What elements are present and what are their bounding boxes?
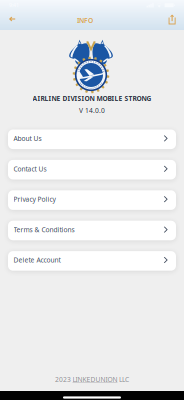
staticText: 2023: [55, 375, 71, 384]
staticText: Terms & Conditions: [14, 225, 75, 234]
staticText: LINKEDUNION: [72, 375, 117, 384]
button[interactable]: Back: [9, 10, 29, 27]
staticText: 9:41: [9, 1, 19, 9]
button[interactable]: Share: [158, 11, 176, 28]
staticText: AIRLINE DIVISION MOBILE STRONG: [32, 94, 151, 103]
staticText: Privacy Policy: [14, 195, 56, 204]
button[interactable]: LINKEDUNION: [72, 375, 117, 384]
staticText: INFO: [77, 16, 93, 25]
button[interactable]: Contact Us: [8, 160, 176, 179]
button[interactable]: Privacy Policy: [8, 190, 176, 210]
staticText: Delete Account: [14, 255, 61, 265]
staticText: V 14.0.0: [79, 106, 105, 115]
staticText: Contact Us: [14, 164, 47, 173]
staticText: LLC: [119, 375, 129, 384]
staticText: About Us: [14, 134, 42, 143]
button[interactable]: About Us: [8, 129, 176, 149]
button[interactable]: Terms & Conditions: [8, 221, 176, 240]
button[interactable]: Delete Account: [8, 251, 176, 271]
